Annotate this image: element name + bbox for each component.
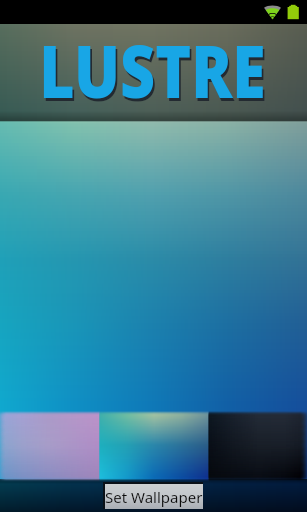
staticText: LUSTRE [40,24,268,122]
other: Status bar [0,0,307,24]
button[interactable]: Wallpaper preview 3 [209,411,307,480]
staticText: LUSTRE [39,21,266,119]
button[interactable]: Wallpaper preview 1 [0,411,99,480]
button[interactable]: Set Wallpaper [103,482,203,509]
staticText: Set Wallpaper [105,487,203,507]
button[interactable]: Wallpaper preview 2 [99,411,209,480]
